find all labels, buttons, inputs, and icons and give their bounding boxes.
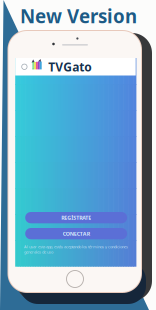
button[interactable]: Settings xyxy=(19,61,30,72)
staticText: CONECTAR xyxy=(63,230,90,237)
staticText: REGÍSTRATE xyxy=(61,214,91,221)
staticText: New Version xyxy=(20,3,137,28)
staticText: TVGato xyxy=(48,59,92,75)
staticText: Al usar esta app, estás aceptando los té… xyxy=(24,244,128,255)
button[interactable]: CONECTAR xyxy=(25,228,127,239)
button[interactable]: REGÍSTRATE xyxy=(25,212,127,223)
